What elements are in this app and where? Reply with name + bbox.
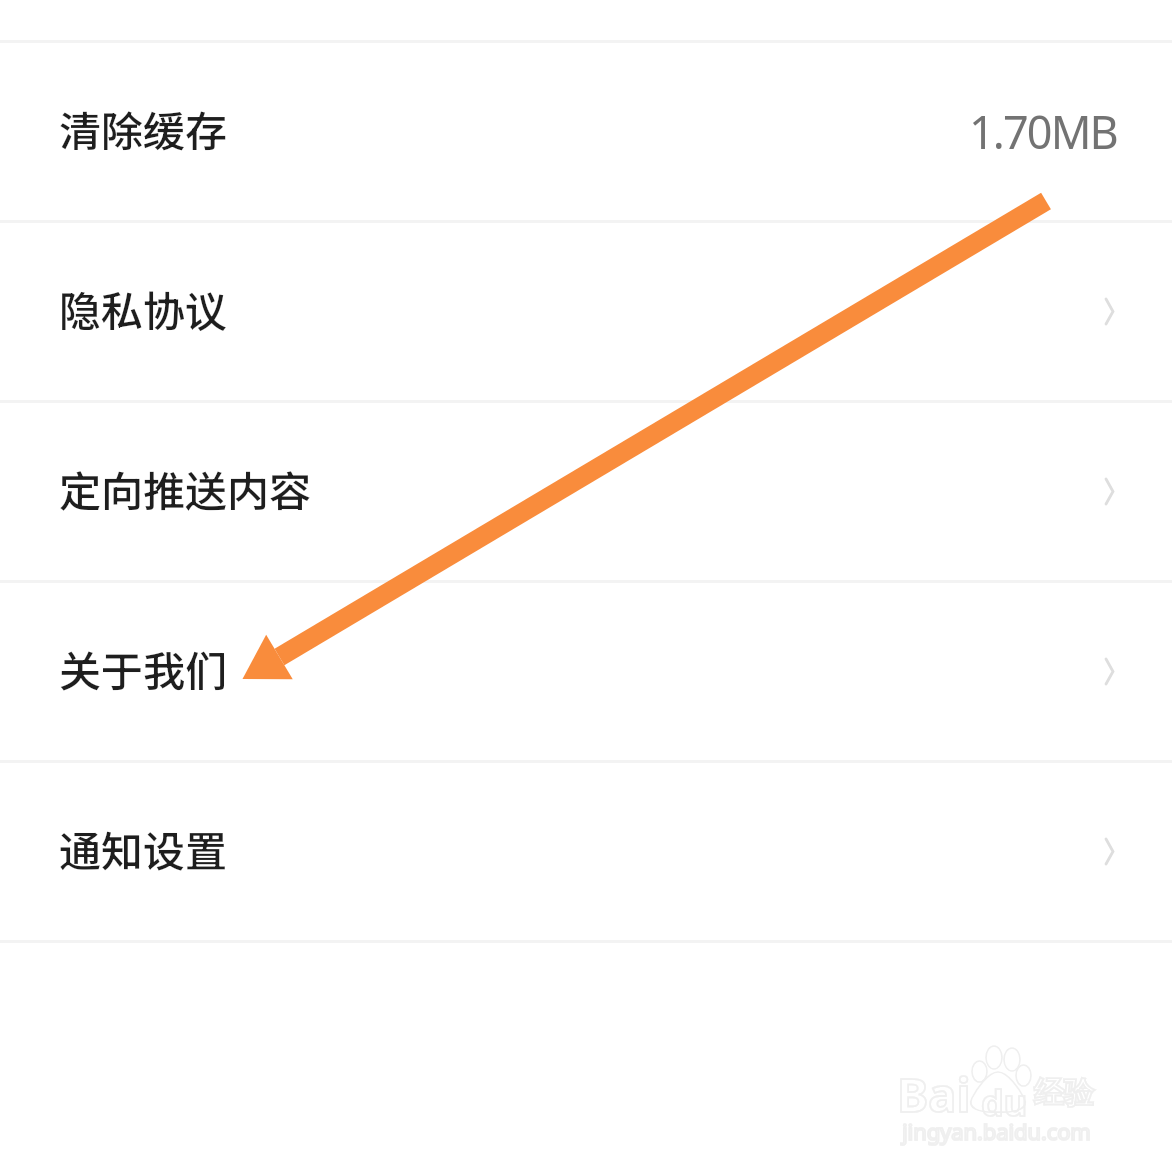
- button[interactable]: 清除缓存: [0, 43, 1172, 220]
- staticText: 定向推送内容: [59, 458, 312, 519]
- button[interactable]: 通知设置: [0, 763, 1172, 940]
- staticText: 1.70MB: [969, 101, 1117, 162]
- staticText: 通知设置: [59, 818, 228, 879]
- staticText: jingyan.baidu.com: [902, 1116, 1091, 1146]
- staticText: 隐私协议: [59, 278, 228, 339]
- staticText: du: [981, 1078, 1028, 1127]
- other: Highlight arrow pointing at 关于我们: [236, 186, 1060, 694]
- staticText: Bai: [897, 1062, 971, 1126]
- button[interactable]: 定向推送内容: [0, 403, 1172, 580]
- staticText: 经验: [1034, 1074, 1094, 1112]
- staticText: 清除缓存: [59, 98, 228, 159]
- staticText: 关于我们: [59, 638, 228, 699]
- button[interactable]: 隐私协议: [0, 223, 1172, 400]
- button[interactable]: 关于我们: [0, 583, 1172, 760]
